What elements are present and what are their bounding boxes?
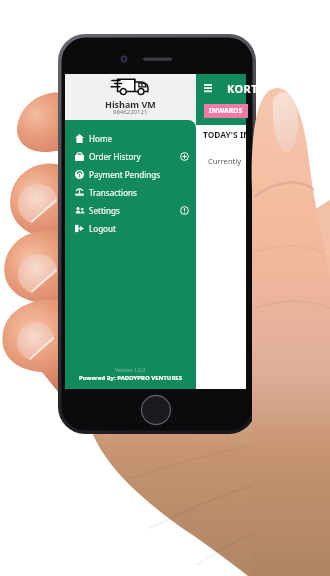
button[interactable]: INWARDS — [204, 104, 248, 118]
staticText: Order History — [89, 151, 141, 162]
staticText: Logout — [89, 223, 116, 234]
staticText: 9846220121 — [113, 108, 148, 116]
staticText: Version 1.0.0 — [115, 367, 146, 374]
button[interactable]: Open navigation drawer — [200, 79, 216, 95]
button[interactable]: Logout — [65, 219, 196, 237]
staticText: TODAY'S IN — [203, 129, 250, 140]
staticText: INWARDS — [209, 106, 243, 116]
button[interactable]: Settings — [65, 201, 196, 219]
staticText: Transactions — [89, 187, 137, 198]
staticText: KORTT — [227, 81, 265, 96]
button[interactable]: Payment Pendings — [65, 165, 196, 183]
staticText: Home — [89, 133, 113, 144]
button[interactable]: Home — [65, 129, 196, 147]
staticText: Payment Pendings — [89, 169, 161, 180]
staticText: Settings — [89, 205, 120, 216]
staticText: Hisham VM — [105, 98, 156, 108]
staticText: Currently — [208, 156, 242, 166]
staticText: Powered By: PADDYPRO VENTURES — [79, 374, 182, 382]
button[interactable]: Transactions — [65, 183, 196, 201]
button[interactable]: Order History — [65, 147, 196, 165]
